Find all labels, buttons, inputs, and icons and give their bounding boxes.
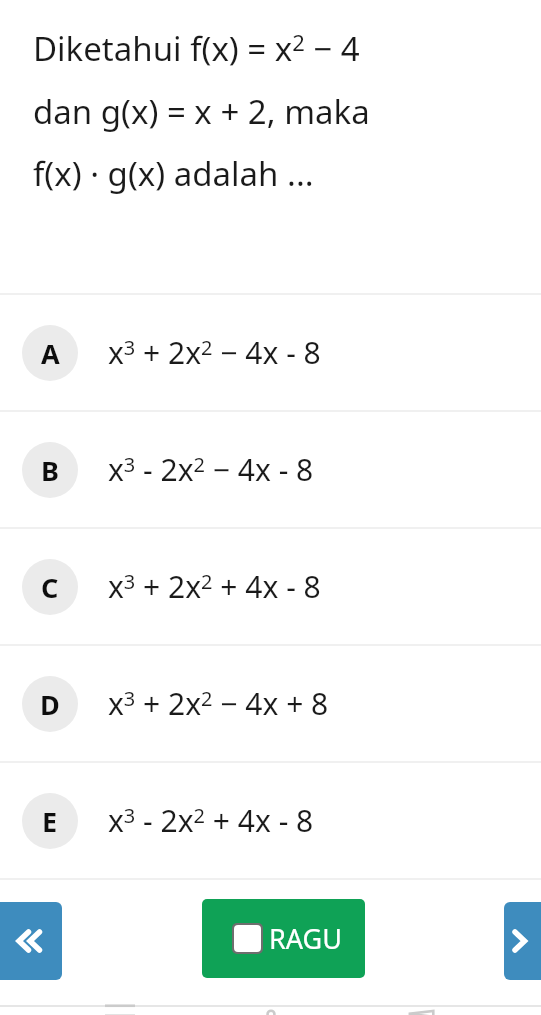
button[interactable]: Next question [504,902,541,980]
button[interactable]: RAGU [202,899,365,978]
staticText: x3 - 2x2 + 4x - 8 [108,800,314,841]
staticText: x3 + 2x2 + 4x - 8 [108,566,321,607]
button[interactable]: Previous question [0,902,62,980]
staticText: Diketahui f(x) = x2 − 4 dan g(x) = x + 2… [33,26,541,195]
staticText: A [41,335,60,372]
button[interactable]: D [0,646,541,761]
staticText: x3 + 2x2 − 4x - 8 [108,332,321,373]
staticText: B [41,452,59,489]
button[interactable]: E [0,763,541,878]
staticText: x3 + 2x2 − 4x + 8 [108,683,329,724]
button[interactable]: A [0,295,541,410]
staticText: C [41,569,59,606]
button[interactable]: Home [231,1007,311,1015]
button[interactable]: B [0,412,541,527]
button[interactable]: Back [381,1007,461,1015]
staticText: x3 - 2x2 − 4x - 8 [108,449,314,490]
button[interactable]: Recent apps [80,1007,160,1015]
button[interactable]: C [0,529,541,644]
staticText: RAGU [269,920,342,957]
staticText: E [42,803,58,840]
staticText: D [40,686,60,723]
